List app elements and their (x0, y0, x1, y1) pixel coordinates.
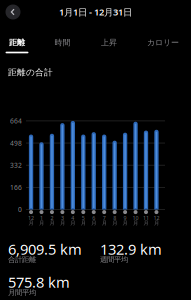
button[interactable]: カロリー (141, 34, 185, 56)
staticText: 上昇 (101, 38, 117, 48)
staticText: 月 (123, 220, 128, 226)
staticText: 月 (60, 220, 65, 226)
staticText: 月 (28, 220, 33, 226)
staticText: 498 (10, 138, 22, 148)
staticText: 1月1日 - 12月31日 (59, 6, 132, 18)
button[interactable]: Back (0, 3, 26, 21)
staticText: 月 (81, 220, 86, 226)
staticText: カロリー (147, 38, 179, 48)
staticText: 合計距離 (8, 255, 36, 264)
staticText: 月間平均 (8, 288, 36, 297)
staticText: 0 (18, 205, 22, 214)
staticText: 月 (39, 220, 44, 226)
button[interactable]: 上昇 (87, 34, 131, 56)
staticText: 8 (113, 214, 116, 222)
staticText: 2 (50, 214, 53, 222)
staticText: 5 (82, 214, 85, 222)
staticText: 10 (133, 214, 139, 222)
staticText: 12 (28, 214, 34, 222)
staticText: 月 (102, 220, 107, 226)
staticText: 1 (40, 214, 43, 222)
staticText: 12 (153, 214, 159, 222)
staticText: 月 (154, 220, 159, 226)
staticText: 6,909.5 km (8, 239, 82, 259)
staticText: 6 (92, 214, 95, 222)
button[interactable]: 距離 (0, 34, 39, 56)
staticText: 575.8 km (8, 272, 70, 292)
button[interactable]: 時間 (40, 34, 84, 56)
staticText: 週間平均 (100, 255, 128, 264)
staticText: 月 (91, 220, 96, 226)
staticText: 332 (10, 161, 22, 170)
staticText: 7 (103, 214, 106, 222)
staticText: 月 (133, 220, 138, 226)
staticText: 月 (112, 220, 117, 226)
staticText: 3 (61, 214, 64, 222)
staticText: 距離の合計 (8, 67, 53, 78)
staticText: 9 (124, 214, 127, 222)
staticText: 664 (10, 116, 22, 125)
staticText: 時間 (54, 38, 70, 48)
staticText: 166 (10, 183, 22, 192)
staticText: 月 (143, 220, 148, 226)
staticText: 月 (70, 220, 75, 226)
staticText: 11 (143, 214, 149, 222)
staticText: 月 (49, 220, 54, 226)
staticText: 4 (71, 214, 74, 222)
staticText: 距離 (9, 38, 25, 48)
staticText: 132.9 km (100, 239, 162, 259)
